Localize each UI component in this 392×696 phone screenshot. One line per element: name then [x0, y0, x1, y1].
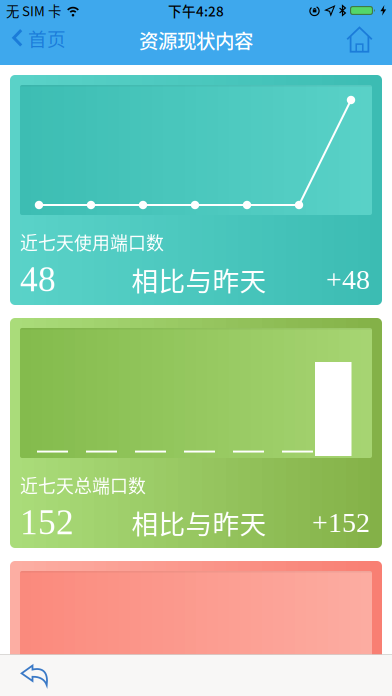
staticText: 资源现状内容	[139, 26, 253, 54]
staticText: +48	[326, 264, 370, 295]
button[interactable]: 主页	[346, 26, 392, 53]
staticText: 下午4:28	[168, 1, 224, 20]
button[interactable]: 返回	[0, 664, 49, 686]
staticText: 近七天总端口数	[20, 472, 146, 498]
staticText: 152	[20, 503, 74, 542]
staticText: 相比与昨天	[131, 260, 266, 299]
button[interactable]: 首页	[0, 24, 66, 51]
staticText: 近七天使用端口数	[20, 229, 164, 255]
staticText: 相比与昨天	[131, 503, 266, 542]
staticText: +152	[312, 507, 370, 538]
staticText: 无 SIM 卡	[6, 1, 61, 20]
staticText: 首页	[28, 24, 66, 51]
staticText: 48	[20, 260, 56, 299]
